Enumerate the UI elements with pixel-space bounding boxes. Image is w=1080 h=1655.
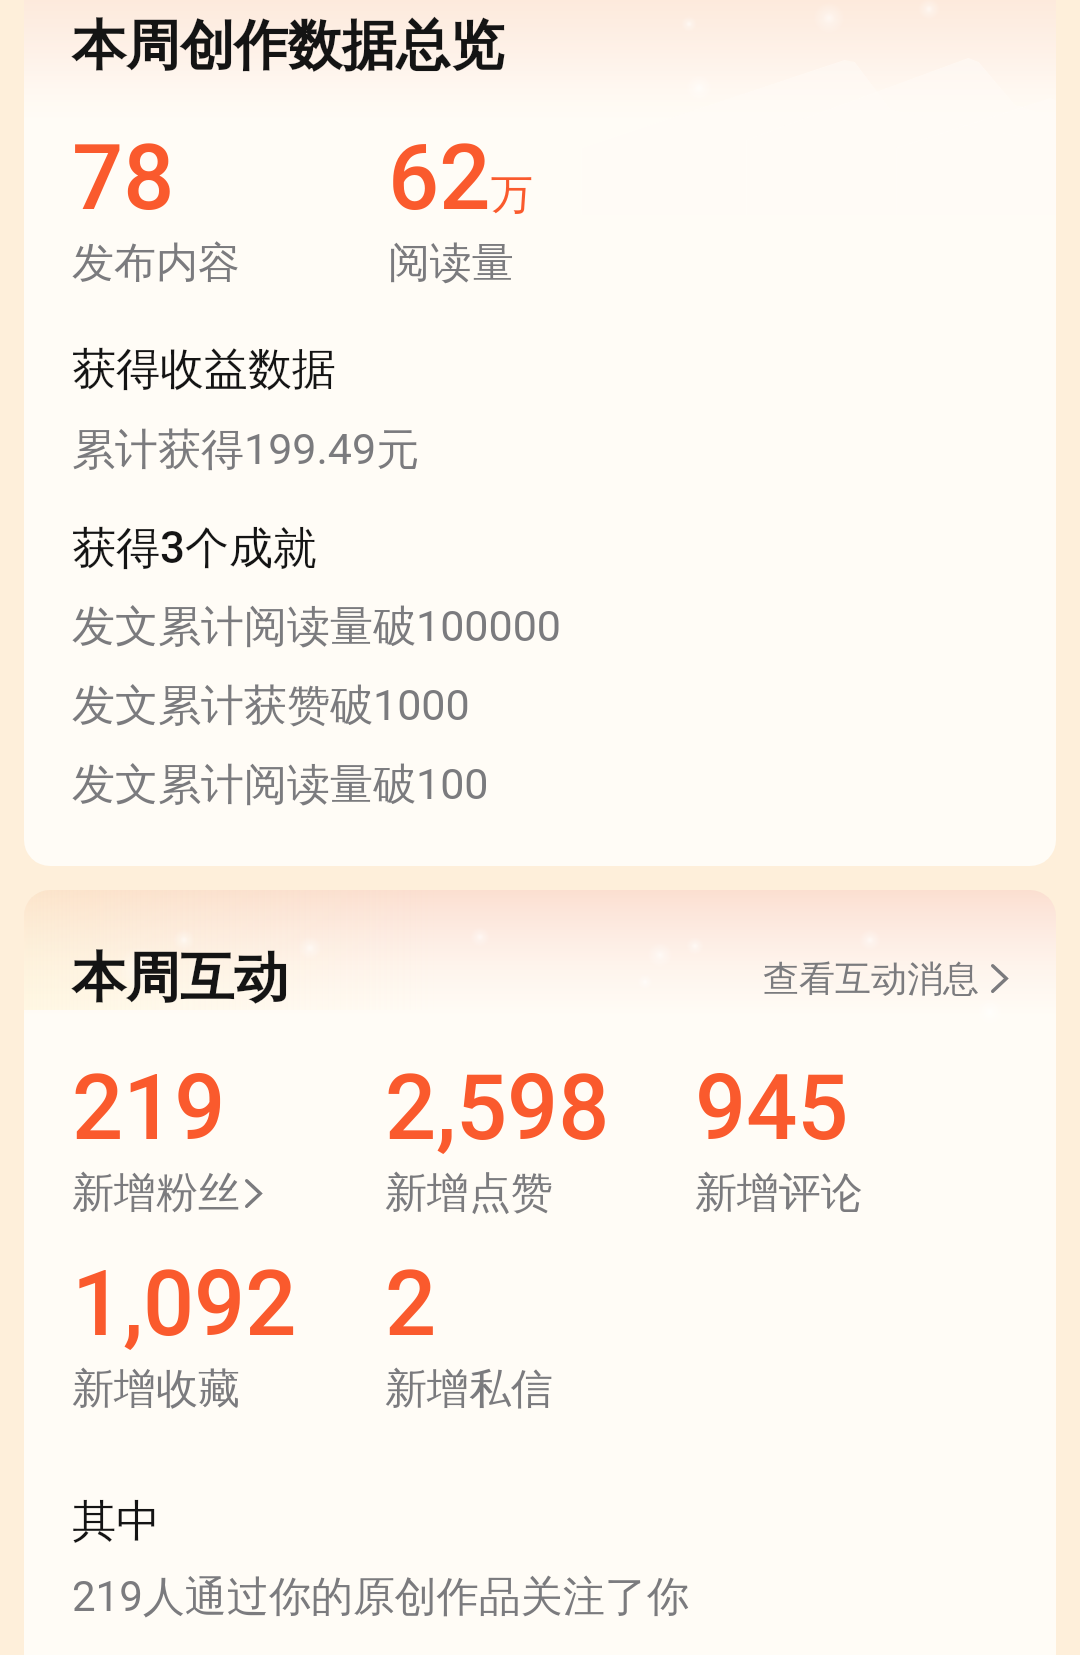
staticText: 新增粉丝 [72, 1167, 240, 1220]
staticText: 78 [72, 126, 175, 231]
staticText: 查看互动消息 [763, 956, 979, 1001]
staticText: 945 [695, 1056, 849, 1161]
button[interactable]: 2 [385, 1252, 685, 1416]
staticText: 发布内容 [72, 237, 240, 290]
staticText: 新增评论 [695, 1167, 863, 1220]
staticText: 新增私信 [385, 1363, 553, 1416]
staticText: 发文累计阅读量破100000 [72, 600, 561, 654]
staticText: 62 [388, 126, 491, 231]
staticText: 发文累计阅读量破100 [72, 758, 489, 812]
staticText: 累计获得199.49元 [72, 423, 420, 477]
button[interactable]: 2,598 [385, 1056, 695, 1220]
staticText: 获得收益数据 [72, 342, 336, 397]
staticText: 新增点赞 [385, 1167, 553, 1220]
staticText: 其中 [72, 1494, 160, 1549]
button[interactable]: 1,092 [72, 1252, 385, 1416]
button[interactable]: 62 [388, 126, 688, 290]
staticText: 阅读量 [388, 237, 514, 290]
button[interactable]: 219 [72, 1056, 385, 1220]
staticText: 219 [72, 1056, 226, 1161]
staticText: 2,598 [385, 1056, 610, 1161]
staticText: 新增收藏 [72, 1363, 240, 1416]
staticText: 万 [491, 169, 533, 222]
button[interactable]: 78 [72, 126, 388, 290]
button[interactable]: 945 [695, 1056, 995, 1220]
staticText: 本周创作数据总览 [72, 12, 504, 80]
button[interactable]: 查看互动消息 [763, 948, 1008, 1009]
staticText: 本周互动 [72, 944, 288, 1012]
staticText: 发文累计获赞破1000 [72, 679, 470, 733]
staticText: 获得3个成就 [72, 521, 318, 576]
other: 查看新增粉丝 [245, 1179, 262, 1208]
staticText: 1,092 [72, 1252, 297, 1357]
staticText: 219人通过你的原创作品关注了你 [72, 1571, 689, 1624]
staticText: 2 [385, 1252, 437, 1357]
